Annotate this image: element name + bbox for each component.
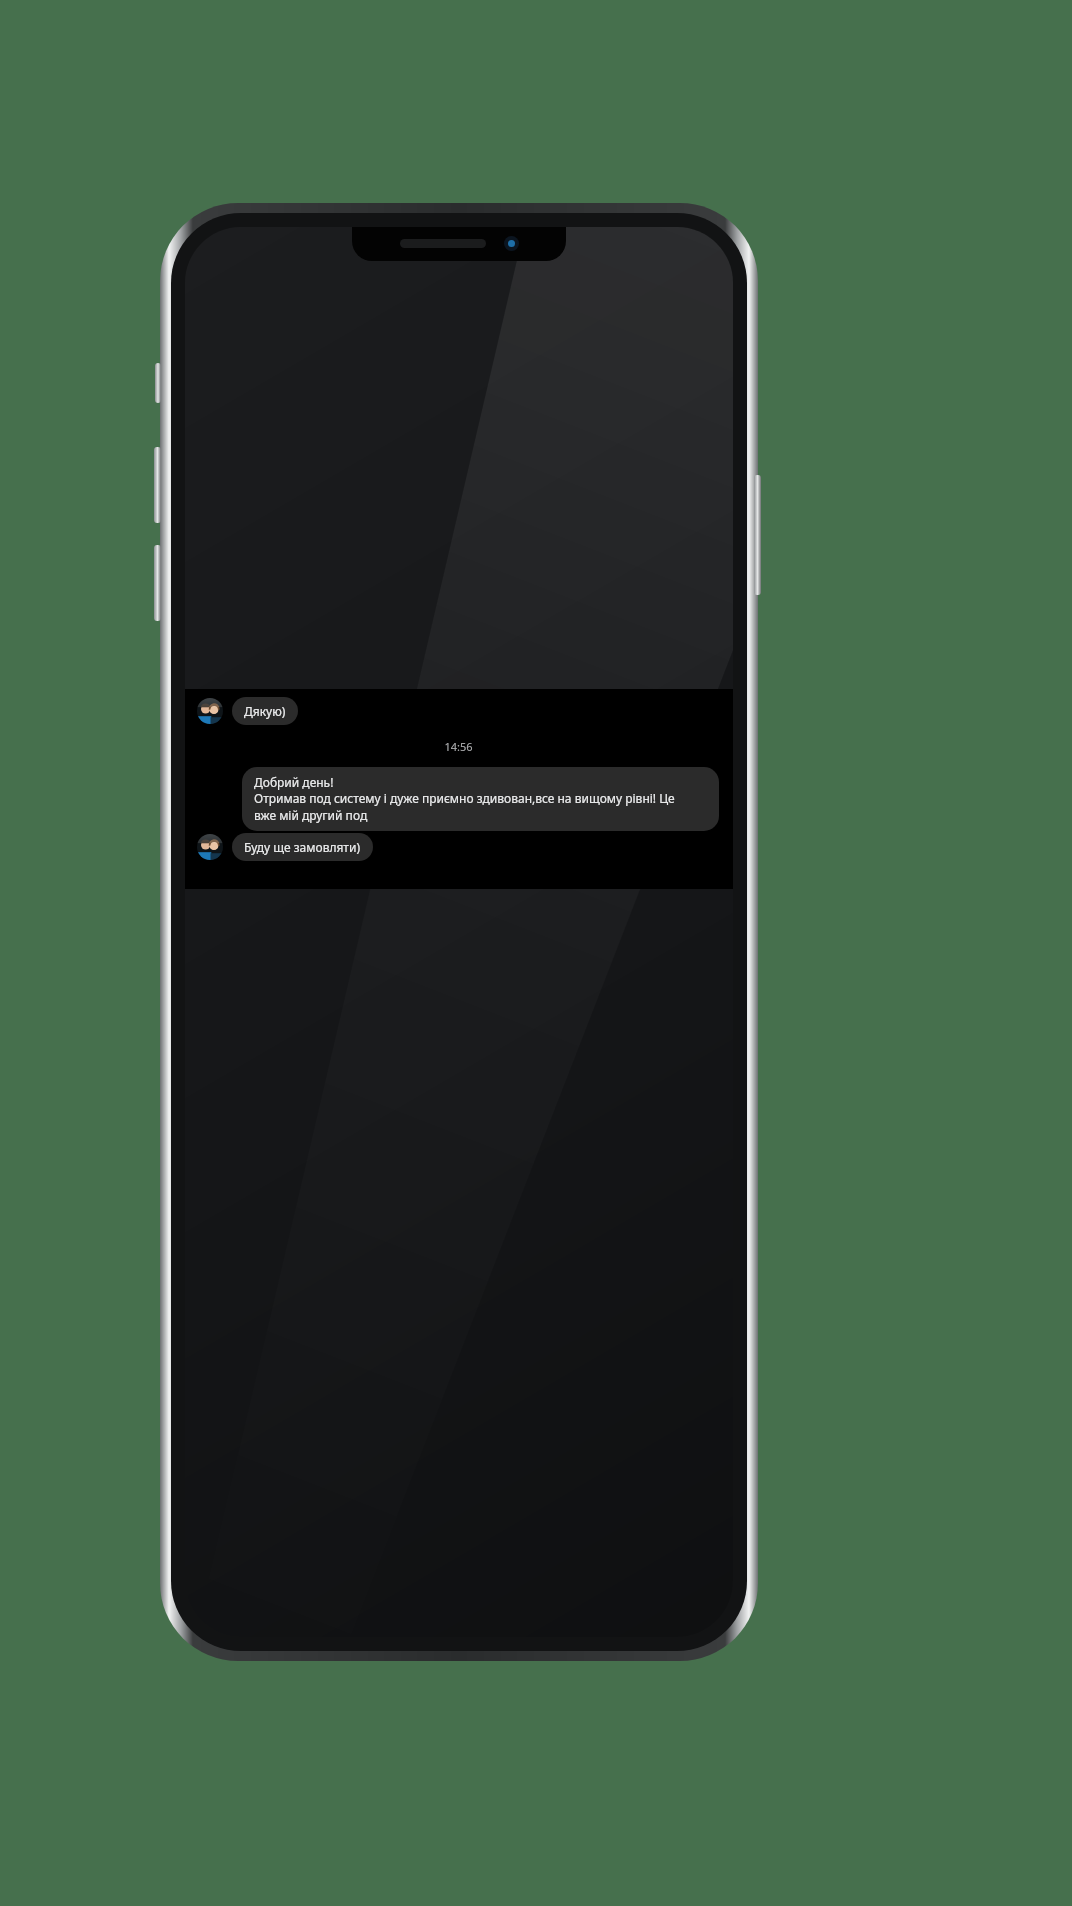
button[interactable]: Добрий день! Отримав под систему і дуже … bbox=[197, 767, 719, 831]
other: Profile photo bbox=[197, 834, 223, 860]
other: Profile photo bbox=[197, 698, 223, 724]
button[interactable]: Profile photo bbox=[197, 697, 719, 725]
staticText: Буду ще замовляти) bbox=[244, 839, 361, 855]
staticText: Дякую) bbox=[244, 703, 286, 719]
staticText: Добрий день! Отримав под систему і дуже … bbox=[254, 774, 675, 824]
button[interactable]: Profile photo bbox=[197, 833, 719, 861]
staticText: 14:56 bbox=[444, 739, 473, 754]
